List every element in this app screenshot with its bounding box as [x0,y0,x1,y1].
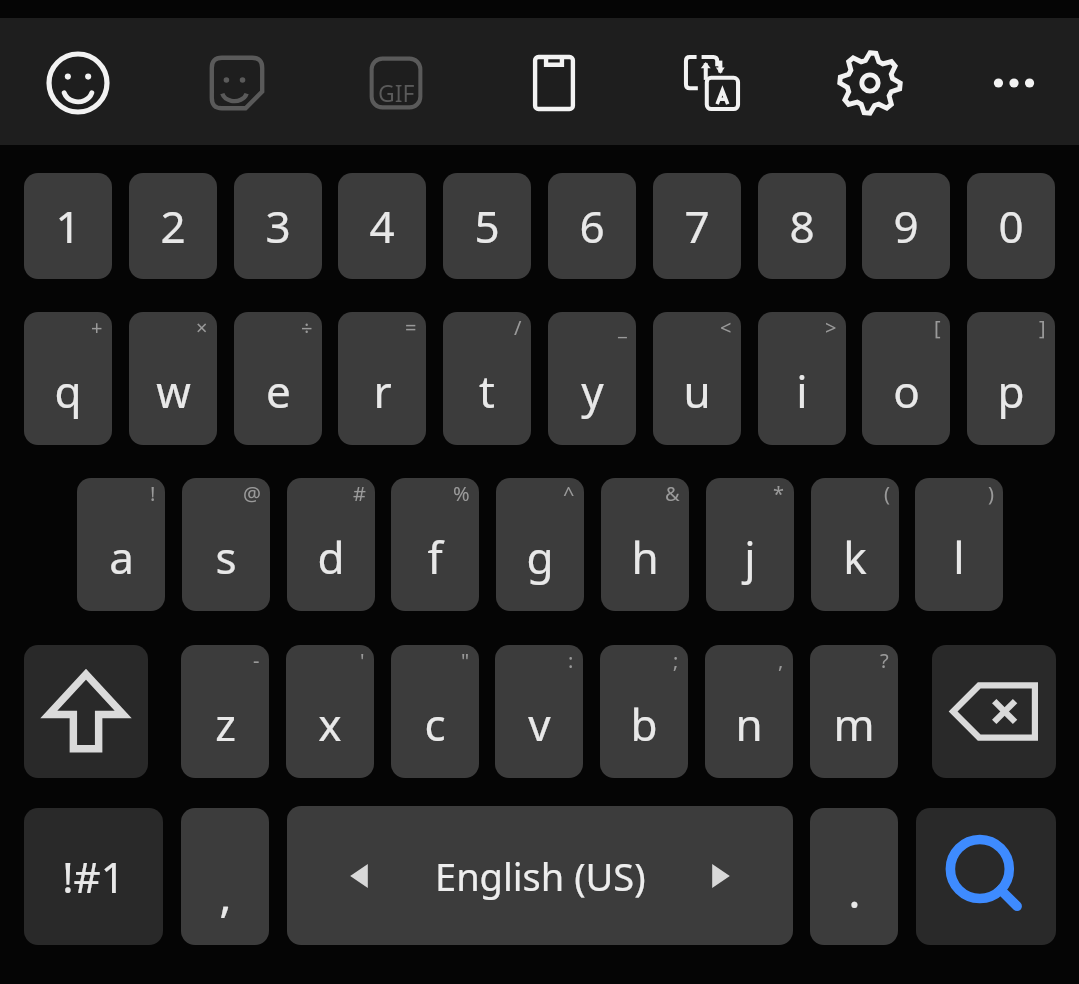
button[interactable]: Stickers [195,41,279,125]
button[interactable]: Next language [695,850,747,902]
button[interactable]: + [24,312,112,445]
staticText: v [528,694,551,754]
button[interactable]: ) [915,478,1003,611]
staticText: t [479,361,495,421]
staticText: / [514,314,522,341]
button[interactable]: , [705,645,793,778]
button[interactable]: 8 [758,173,846,279]
staticText: < [720,314,732,341]
staticText: 0 [998,196,1024,256]
button[interactable]: 7 [653,173,741,279]
button[interactable]: 2 [129,173,217,279]
staticText: + [91,314,103,341]
button[interactable]: / [443,312,531,445]
button[interactable]: Backspace [932,645,1056,778]
button[interactable]: !#1 [24,808,163,945]
staticText: r [373,361,392,421]
staticText: ( [884,480,890,507]
staticText: u [683,361,711,421]
staticText: % [453,480,470,507]
button[interactable]: ( [811,478,899,611]
button[interactable]: ' [286,645,374,778]
staticText: & [665,480,680,507]
button[interactable]: 3 [234,173,322,279]
button[interactable]: ÷ [234,312,322,445]
button[interactable]: 4 [338,173,426,279]
staticText: l [953,527,965,587]
button[interactable]: ? [810,645,898,778]
staticText: 5 [474,196,500,256]
staticText: × [196,314,208,341]
button[interactable]: @ [182,478,270,611]
button[interactable]: Settings [828,41,912,125]
button[interactable]: = [338,312,426,445]
button[interactable]: * [706,478,794,611]
button[interactable]: Search [916,808,1056,945]
button[interactable]: . [810,808,898,945]
button[interactable]: × [129,312,217,445]
button[interactable]: - [181,645,269,778]
staticText: f [427,527,443,587]
button[interactable]: GIF [354,41,438,125]
button[interactable]: ! [77,478,165,611]
button[interactable]: 6 [548,173,636,279]
staticText: 3 [265,196,291,256]
button[interactable]: 1 [24,173,112,279]
staticText: ] [1039,314,1046,341]
button[interactable]: ] [967,312,1055,445]
staticText: i [796,361,808,421]
staticText: ! [150,480,156,507]
button[interactable]: Clipboard [512,41,596,125]
staticText: _ [618,314,627,341]
button[interactable]: Previous language [333,850,385,902]
staticText: g [526,527,554,587]
staticText: 2 [160,196,186,256]
staticText: e [266,361,291,421]
staticText: h [631,527,659,587]
button[interactable]: ^ [496,478,584,611]
button[interactable]: , [181,808,269,945]
staticText: p [997,361,1025,421]
button[interactable]: ; [600,645,688,778]
staticText: ) [988,480,994,507]
button[interactable]: & [601,478,689,611]
staticText: m [833,694,875,754]
button[interactable]: # [287,478,375,611]
staticText: q [54,361,82,421]
staticText: English (US) [435,850,646,902]
staticText: z [215,694,236,754]
button[interactable]: 0 [967,173,1055,279]
staticText: k [843,527,867,587]
staticText: * [773,480,785,507]
button[interactable]: Translate [670,41,754,125]
button[interactable]: 5 [443,173,531,279]
staticText: # [353,480,366,507]
button[interactable]: More options [972,41,1056,125]
staticText: c [424,694,446,754]
button[interactable]: > [758,312,846,445]
button[interactable]: < [653,312,741,445]
staticText: a [109,527,134,587]
staticText: GIF [378,77,415,108]
staticText: . [848,859,861,922]
button[interactable]: English (US) [287,806,793,945]
button[interactable]: Shift [24,645,148,778]
staticText: b [630,694,658,754]
button[interactable]: Emoji [36,41,120,125]
staticText: !#1 [62,848,125,905]
staticText: j [744,527,756,587]
button[interactable]: : [495,645,583,778]
staticText: d [317,527,345,587]
button[interactable]: % [391,478,479,611]
staticText: s [215,527,237,587]
staticText: @ [243,480,261,507]
button[interactable]: _ [548,312,636,445]
staticText: " [461,647,470,674]
button[interactable]: " [391,645,479,778]
staticText: 9 [893,196,919,256]
button[interactable]: 9 [862,173,950,279]
staticText: 6 [579,196,605,256]
button[interactable]: [ [862,312,950,445]
staticText: ' [360,647,365,674]
staticText: = [405,314,417,341]
